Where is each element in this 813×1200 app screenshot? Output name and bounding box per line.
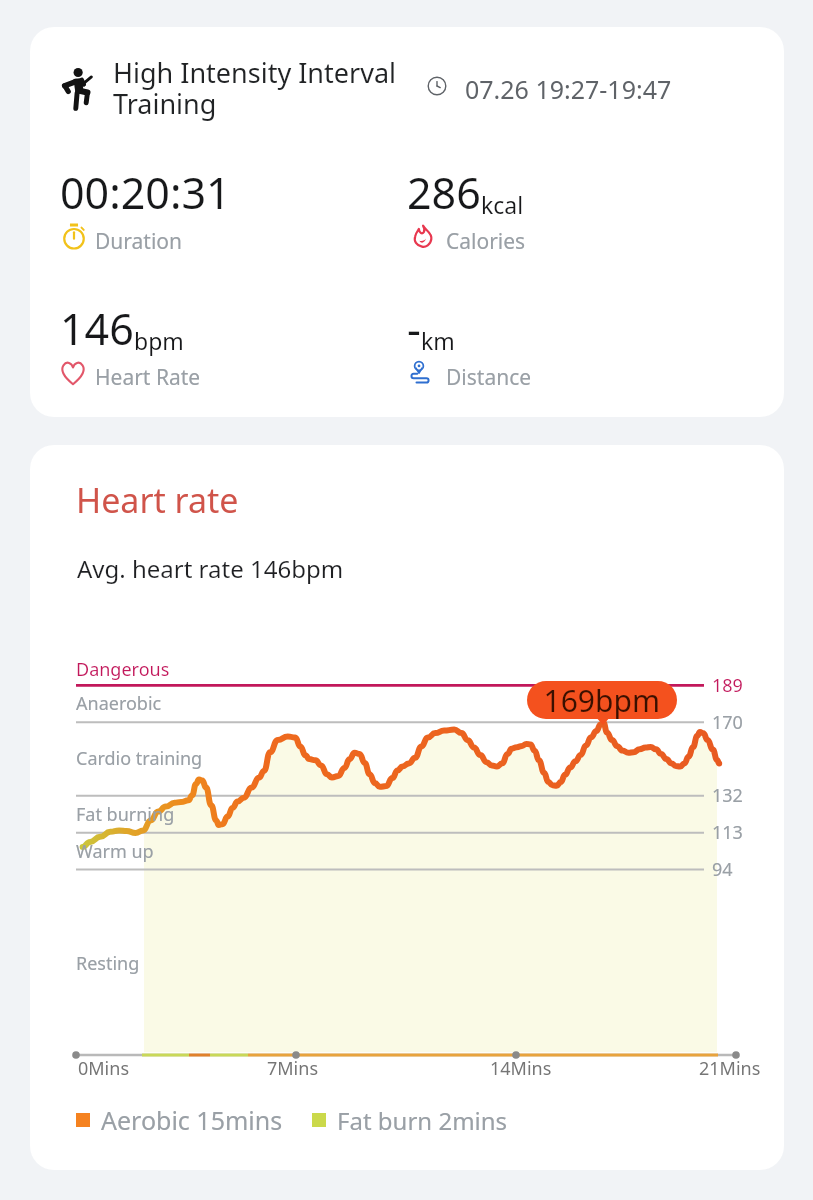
button[interactable]: Heart rate [30,445,784,1170]
staticText: bpm [134,325,184,356]
staticText: 07.26 19:27-19:47 [465,72,672,106]
staticText: Avg. heart rate 146bpm [77,552,344,585]
button[interactable]: High Intensity Interval Training [30,27,784,417]
staticText: km [421,325,455,356]
staticText: Fat burn 2mins [337,1104,508,1137]
staticText: Aerobic 15mins [101,1103,283,1137]
staticText: - [407,299,421,358]
staticText: Heart rate [76,477,239,523]
staticText: Calories [446,227,526,256]
staticText: Distance [446,363,532,392]
staticText: High Intensity Interval Training [113,54,403,122]
staticText: 146 [60,299,134,358]
staticText: Duration [95,227,183,256]
staticText: 00:20:31 [60,163,231,222]
other: Workout time [427,76,447,96]
staticText: 286 [407,163,481,222]
staticText: Heart Rate [95,363,201,392]
staticText: kcal [481,189,524,220]
